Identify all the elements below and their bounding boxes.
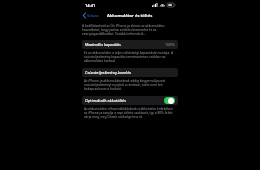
staticText: Csúcsteljesítmény-kezelés: [85, 70, 132, 75]
staticText: A beállításoknál az Ön iPhone-ja elemzi …: [82, 24, 178, 36]
staticText: Vissza: [87, 13, 99, 18]
other: Optimalizált akkutöltés kapcsoló: [164, 97, 175, 104]
staticText: Az akkumulátor elhasználódásának csökken…: [84, 107, 176, 119]
button[interactable]: Csúcsteljesítmény-kezelés: [82, 68, 178, 77]
staticText: Ez az akkumulátor a teljes töltöttségi k…: [84, 51, 176, 63]
staticText: Optimalizált akkutöltés: [85, 98, 127, 103]
staticText: 100%: [165, 42, 175, 47]
button[interactable]: Optimalizált akkutöltés: [82, 96, 178, 105]
staticText: Akkumulátor és töltés: [107, 13, 153, 19]
button[interactable]: Vissza: [82, 12, 100, 19]
staticText: Maximális kapacitás: [85, 42, 121, 47]
staticText: Az iPhone-ja akkumulátorának eddig kiegy…: [84, 79, 176, 91]
button[interactable]: Maximális kapacitás: [82, 40, 178, 49]
staticText: 14:41: [85, 3, 96, 8]
